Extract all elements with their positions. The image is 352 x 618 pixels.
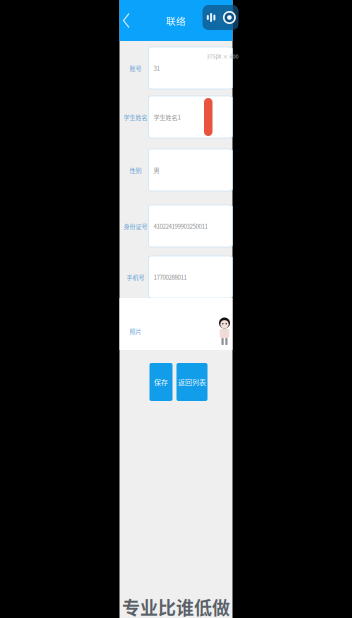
staticText: 账号 <box>129 64 141 72</box>
staticText: 17700288011 <box>153 273 186 281</box>
staticText: 性别 <box>129 166 141 174</box>
staticText: 410224199903250011 <box>153 222 207 230</box>
staticText: 学生姓名1 <box>153 113 180 121</box>
button[interactable]: 返回列表 <box>176 363 207 401</box>
staticText: 31 <box>153 64 159 72</box>
staticText: 身份证号 <box>123 222 147 230</box>
staticText: 保存 <box>154 377 168 387</box>
button[interactable]: Back <box>119 0 135 41</box>
staticText: 返回列表 <box>178 377 206 387</box>
staticText: 联络 <box>166 13 186 27</box>
staticText: 学生姓名 <box>123 113 147 121</box>
staticText: 375px × 600 <box>206 52 238 60</box>
staticText: 男 <box>153 166 159 174</box>
staticText: 专业比谁低做 <box>122 594 230 618</box>
staticText: 手机号 <box>126 273 144 281</box>
staticText: 照片 <box>129 327 141 335</box>
button[interactable]: 保存 <box>149 363 172 401</box>
